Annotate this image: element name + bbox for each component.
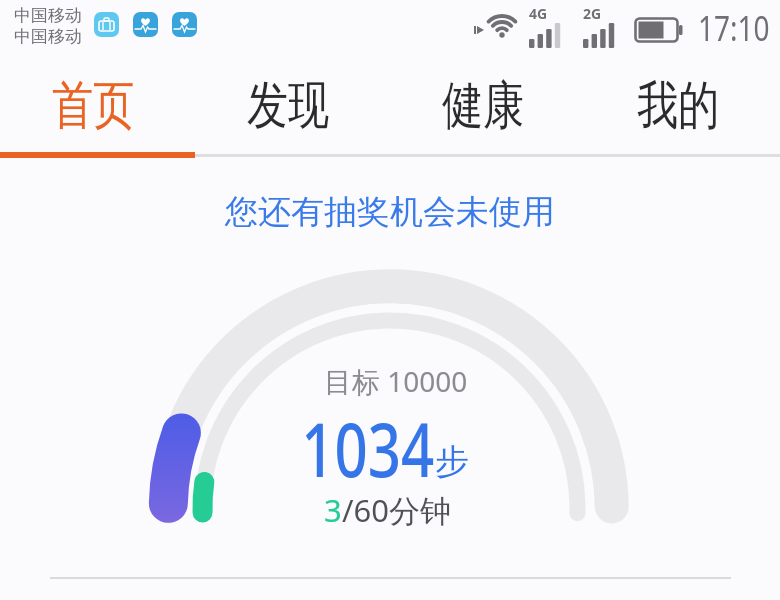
button[interactable]: 健康 bbox=[385, 60, 580, 152]
staticText: 1034 bbox=[301, 398, 435, 499]
staticText: 2G bbox=[583, 4, 602, 23]
staticText: 步 bbox=[435, 440, 469, 483]
staticText: 目标 10000 bbox=[324, 362, 468, 400]
button[interactable]: 您还有抽奖机会未使用 bbox=[225, 191, 555, 233]
staticText: 您还有抽奖机会未使用 bbox=[225, 191, 555, 233]
staticText: 首页 bbox=[52, 73, 134, 139]
staticText: 17:10 bbox=[698, 4, 770, 52]
staticText: 健康 bbox=[442, 73, 524, 139]
staticText: /60分钟 bbox=[342, 489, 451, 531]
staticText: 3 bbox=[324, 489, 342, 531]
button[interactable]: 首页 bbox=[0, 60, 190, 152]
button[interactable]: 发现 bbox=[190, 60, 385, 152]
button[interactable]: 我的 bbox=[580, 60, 775, 152]
staticText: 中国移动 bbox=[14, 26, 82, 47]
staticText: 4G bbox=[529, 4, 548, 23]
staticText: 中国移动 bbox=[14, 5, 82, 26]
staticText: 我的 bbox=[637, 73, 719, 139]
staticText: 发现 bbox=[247, 73, 329, 139]
